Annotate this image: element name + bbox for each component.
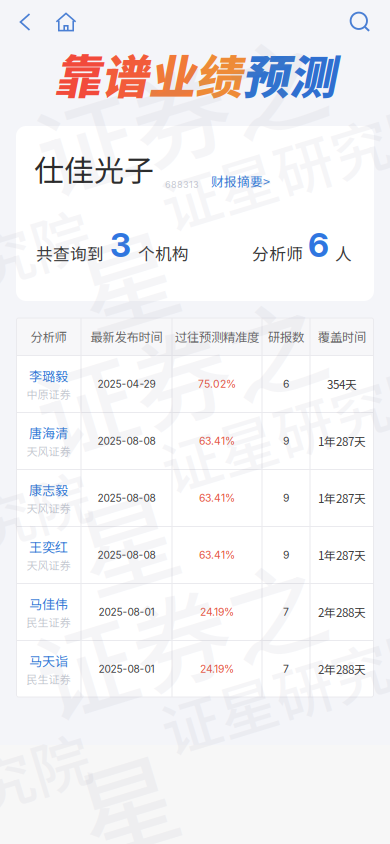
staticText: 天风证券 [26,557,70,573]
staticText: 共查询到 [36,241,104,265]
staticText: 马天诣 [29,651,68,670]
button[interactable]: Home [44,0,88,44]
staticText: 王奕红 [29,537,68,556]
staticText: 75.02% [198,378,236,390]
staticText: 9 [283,492,289,504]
staticText: 2年288天 [318,604,366,620]
button[interactable]: 财报摘要> [211,172,270,190]
staticText: 研报数 [268,328,304,345]
staticText: 测 [289,40,336,108]
staticText: 2025-08-01 [98,663,154,675]
staticText: 分析师 [30,328,66,345]
staticText: 天风证券 [26,500,70,516]
staticText: 马佳伟 [29,594,68,613]
staticText: 覆盖时间 [318,328,366,345]
staticText: 7 [283,606,289,618]
staticText: 63.41% [199,492,235,504]
staticText: 354天 [327,376,357,392]
staticText: 2025-08-08 [97,435,155,447]
staticText: 63.41% [199,435,235,447]
staticText: 63.41% [199,549,235,561]
staticText: 9 [283,549,289,561]
staticText: 人 [335,241,352,265]
staticText: 财报摘要> [211,172,270,190]
staticText: 1年287天 [318,547,366,563]
staticText: 唐海清 [29,423,68,442]
staticText: 预 [242,40,289,108]
staticText: 过往预测精准度 [175,328,259,345]
staticText: 分析师 [252,241,303,265]
staticText: 6 [308,225,329,265]
staticText: 个机构 [138,241,189,265]
staticText: 688313 [165,179,199,190]
staticText: 康志毅 [29,480,68,499]
staticText: 2025-04-29 [97,378,155,390]
staticText: 民生证券 [26,671,70,687]
staticText: 民生证券 [26,614,70,630]
staticText: 1年287天 [318,433,366,449]
staticText: 证星研究院 [156,645,390,730]
staticText: 9 [283,435,289,447]
staticText: 证券之星 [52,299,349,585]
staticText: 证券之星 [52,37,349,323]
button[interactable]: Back [6,0,44,44]
staticText: 2025-08-08 [97,492,155,504]
staticText: 2年288天 [318,661,366,677]
staticText: 2025-08-08 [97,549,155,561]
staticText: 1年287天 [318,490,366,506]
staticText: 李璐毅 [29,366,68,385]
staticText: 证券之星 [52,561,349,844]
staticText: 证星研究院 [156,121,390,206]
staticText: 24.19% [200,606,234,618]
staticText: 仕佳光子 [34,147,154,190]
staticText: 业 [148,40,195,108]
staticText: 中原证券 [26,386,70,402]
staticText: 最新发布时间 [90,328,162,345]
button[interactable]: Search [338,0,382,44]
staticText: 谱 [101,40,148,108]
staticText: 证星研究院 [156,383,390,468]
staticText: 绩 [195,40,242,108]
staticText: 证星研究院 [0,492,95,577]
staticText: 靠 [54,40,101,108]
staticText: 天风证券 [26,443,70,459]
staticText: 7 [283,663,289,675]
staticText: 证星研究院 [0,230,95,315]
staticText: 证星研究院 [0,754,95,839]
staticText: 6 [283,378,289,390]
staticText: 3 [110,225,131,265]
staticText: 2025-08-01 [98,606,154,618]
staticText: 24.19% [200,663,234,675]
